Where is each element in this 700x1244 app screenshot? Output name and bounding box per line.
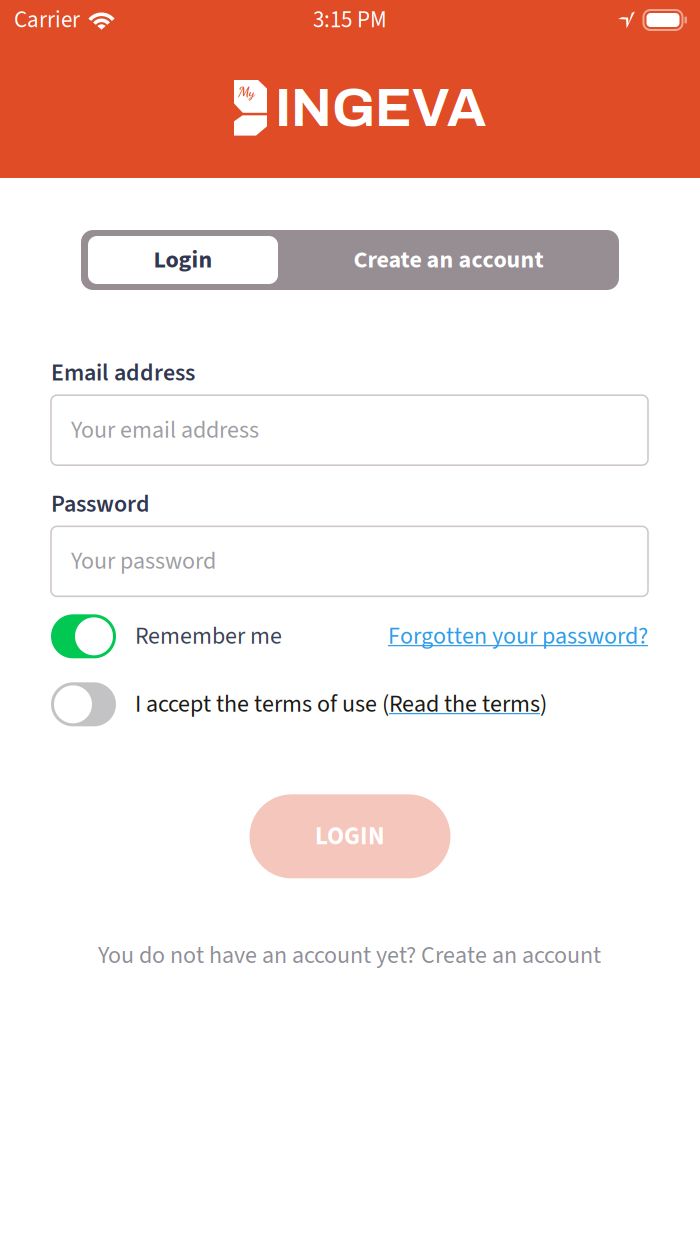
button[interactable]: Your email address <box>51 395 648 465</box>
staticText: Carrier <box>14 4 80 36</box>
staticText: INGEVA <box>275 79 486 137</box>
staticText: Login <box>153 243 212 277</box>
staticText: Your password <box>71 544 216 578</box>
staticText: Forgotten your password? <box>388 619 648 653</box>
staticText: Password <box>51 487 150 521</box>
staticText: I accept the terms of use (Read the term… <box>135 688 547 721</box>
staticText: Remember me <box>135 619 282 653</box>
staticText: Create an account <box>353 243 543 277</box>
staticText: Your email address <box>71 413 259 447</box>
button[interactable]: Login <box>81 236 278 284</box>
staticText: You do not have an account yet? Create a… <box>98 938 601 973</box>
button[interactable]: LOGIN <box>249 794 450 878</box>
staticText: Email address <box>51 356 195 390</box>
button[interactable]: I accept the terms of use (Read the term… <box>51 682 547 726</box>
button[interactable]: Forgotten your password? <box>388 619 648 653</box>
staticText: My <box>238 83 255 101</box>
staticText: LOGIN <box>315 819 385 854</box>
button[interactable]: Your password <box>51 526 648 596</box>
button[interactable]: Remember me <box>51 614 282 658</box>
button[interactable]: Create an account <box>278 230 619 290</box>
button[interactable]: You do not have an account yet? Create a… <box>98 938 601 973</box>
staticText: 3:15 PM <box>313 4 387 36</box>
